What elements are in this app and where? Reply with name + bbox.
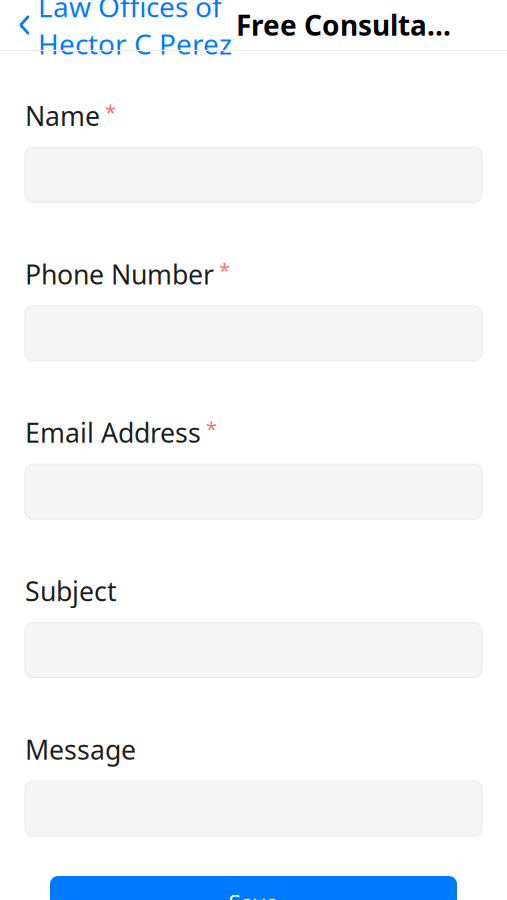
staticText: Subject bbox=[25, 573, 117, 609]
staticText: Phone Number bbox=[25, 256, 214, 292]
button[interactable]: Save bbox=[50, 876, 457, 900]
staticText: Free Consulta... bbox=[236, 6, 451, 44]
staticText: * bbox=[100, 98, 116, 125]
staticText: Message bbox=[25, 732, 136, 767]
staticText: Law Offices of Hector C Perez bbox=[38, 0, 232, 62]
staticText: Name bbox=[25, 98, 100, 133]
staticText: * bbox=[201, 415, 217, 442]
staticText: Save bbox=[228, 888, 278, 900]
staticText: Email Address bbox=[25, 415, 201, 450]
button[interactable]: Law Offices of Hector C Perez bbox=[0, 0, 236, 50]
staticText: * bbox=[214, 257, 230, 283]
